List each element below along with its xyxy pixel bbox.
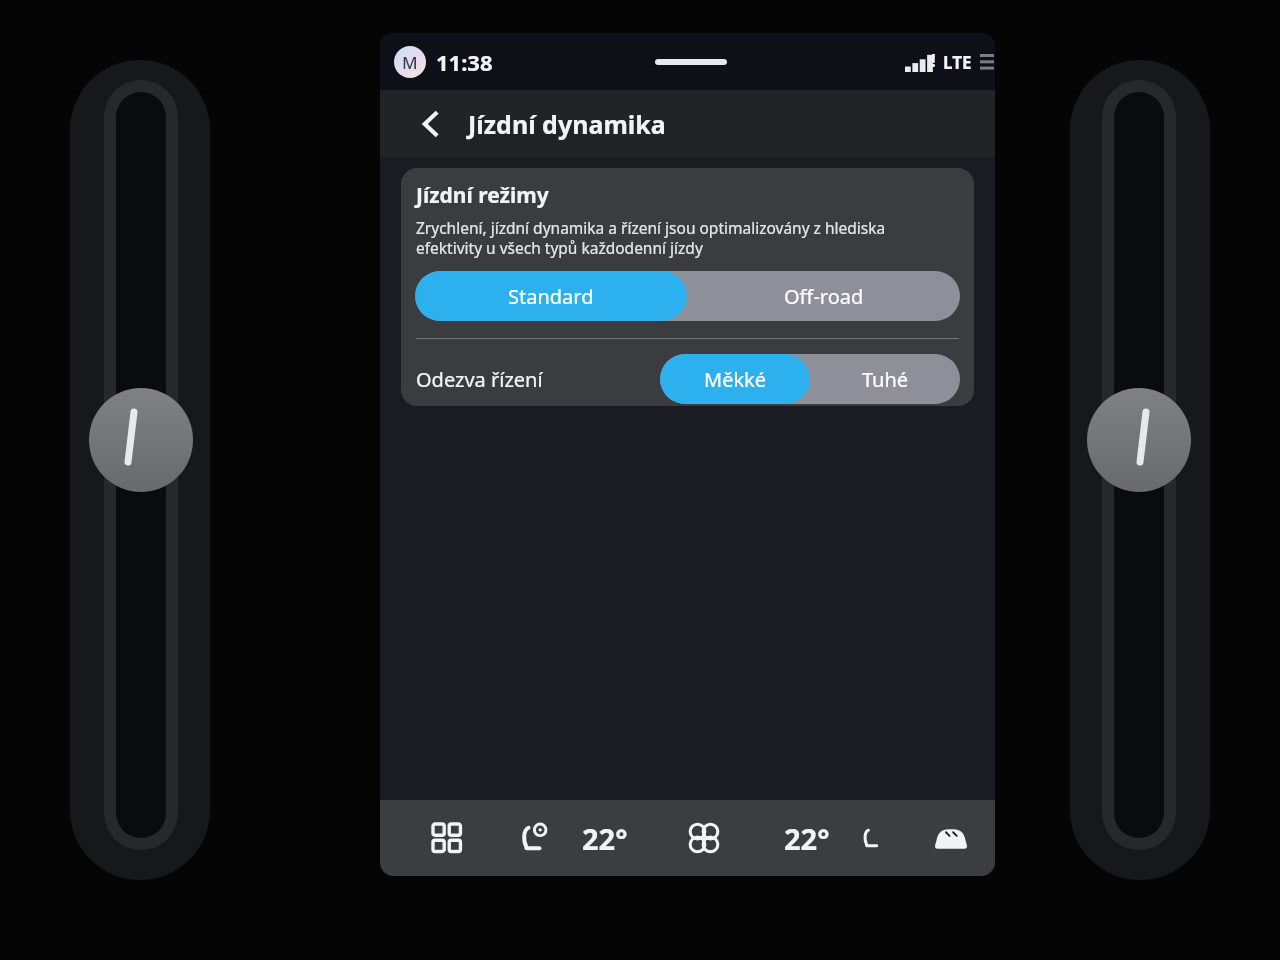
staticText: M [402, 51, 418, 74]
button[interactable]: Passenger seat climate [850, 817, 892, 859]
button[interactable]: Tuhé [810, 354, 960, 404]
staticText: Tuhé [862, 366, 909, 393]
button[interactable]: Apps [424, 815, 470, 861]
staticText: Odezva řízení [416, 366, 543, 393]
button[interactable]: Driver seat climate [508, 814, 556, 862]
button[interactable]: 22° [570, 813, 640, 863]
button[interactable]: Back [410, 103, 452, 145]
staticText: Jízdní dynamika [468, 107, 666, 141]
button[interactable]: 22° [772, 813, 842, 863]
button[interactable]: Fan speed [680, 814, 728, 862]
staticText: ! [931, 49, 936, 72]
staticText: Zrychlení, jízdní dynamika a řízení jsou… [416, 217, 886, 259]
staticText: 11:38 [436, 47, 493, 77]
button[interactable]: Profile [394, 46, 426, 78]
button[interactable]: Měkké [660, 354, 810, 404]
staticText: Standard [508, 283, 594, 310]
staticText: Off-road [784, 283, 864, 310]
staticText: Jízdní režimy [416, 181, 549, 210]
staticText: 22° [784, 819, 830, 858]
button[interactable]: Standard [415, 271, 687, 321]
button[interactable]: Car status [925, 812, 977, 864]
staticText: Měkké [704, 366, 767, 393]
staticText: 22° [582, 819, 628, 858]
staticText: LTE [943, 51, 972, 74]
button[interactable]: Off-road [687, 271, 960, 321]
